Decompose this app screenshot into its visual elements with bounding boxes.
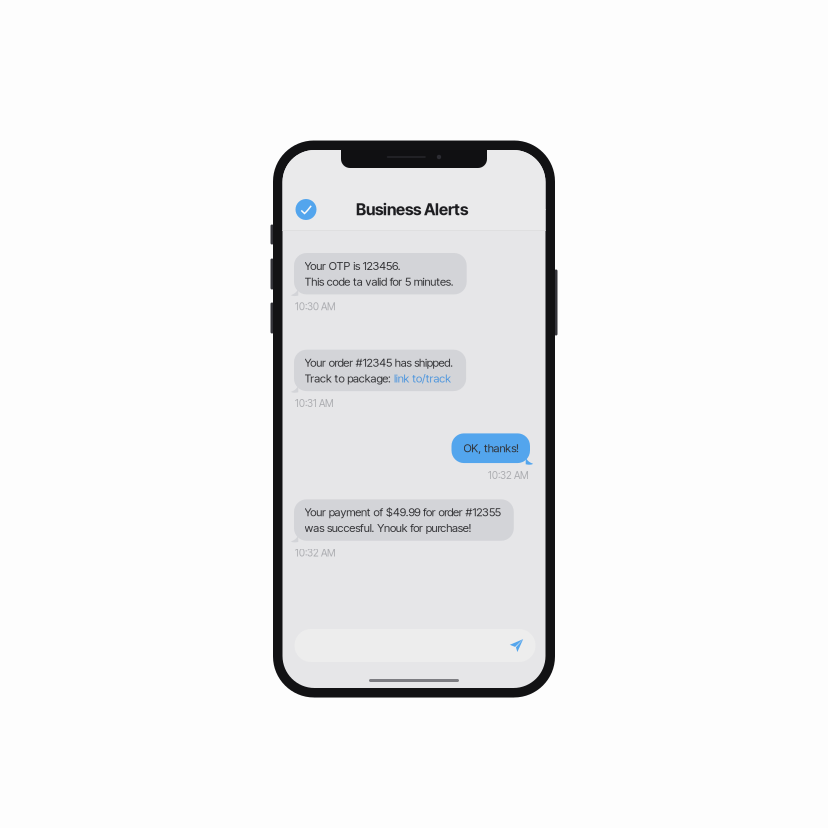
- staticText: Your order #12345 has shipped.: [304, 356, 453, 369]
- staticText: 10:32 AM: [488, 469, 529, 481]
- staticText: link to/track: [394, 371, 451, 385]
- staticText: Track to package:: [304, 371, 394, 385]
- staticText: 10:32 AM: [295, 547, 336, 559]
- button[interactable]: Message: [294, 629, 535, 662]
- staticText: 10:31 AM: [295, 397, 334, 409]
- staticText: 10:30 AM: [295, 300, 336, 313]
- staticText: Your payment of $49.99 for order #12355: [304, 505, 501, 519]
- staticText: was succesful. Ynouk for purchase!: [304, 521, 471, 535]
- staticText: OK, thanks!: [463, 441, 519, 455]
- staticText: This code ta valid for 5 minutes.: [304, 275, 454, 288]
- staticText: Business Alerts: [356, 200, 468, 219]
- staticText: Your OTP is 123456.: [304, 259, 401, 273]
- button[interactable]: Verified business account: [282, 192, 323, 227]
